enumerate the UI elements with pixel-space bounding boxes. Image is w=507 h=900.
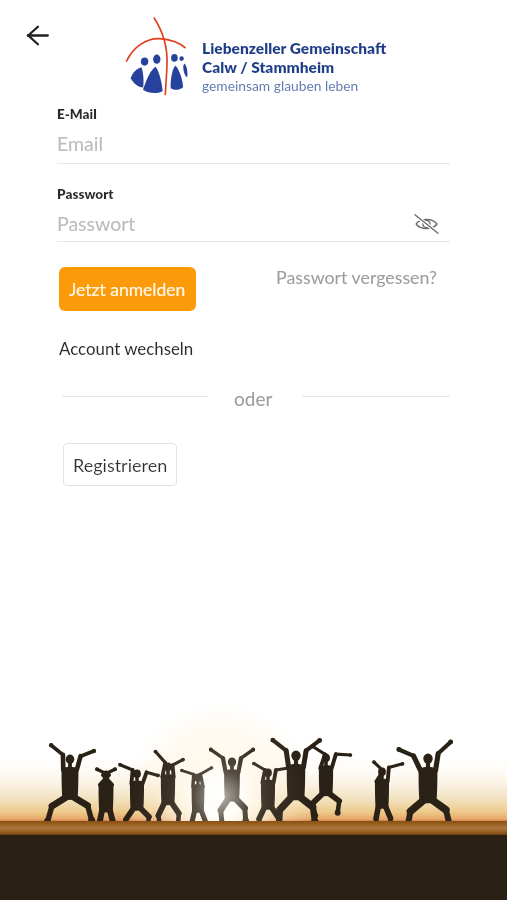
button[interactable]: Back [15,13,59,57]
button[interactable]: Account wechseln [59,335,194,361]
button[interactable]: Jetzt anmelden [59,267,196,311]
staticText: oder [234,387,273,410]
staticText: Email [57,132,103,155]
button[interactable]: Registrieren [63,443,177,486]
staticText: Liebenzeller Gemeinschaft [202,39,387,58]
staticText: Calw / Stammheim [202,58,335,77]
staticText: Account wechseln [59,338,194,358]
staticText: Passwort vergessen? [276,266,438,287]
staticText: Jetzt anmelden [69,279,186,300]
button[interactable]: Show password [408,206,444,242]
staticText: gemeinsam glauben leben [202,77,359,94]
button[interactable]: Passwort vergessen? [276,262,448,290]
staticText: E-Mail [57,106,97,122]
staticText: Passwort [57,186,114,202]
staticText: Passwort [57,212,136,235]
staticText: Registrieren [73,454,168,476]
